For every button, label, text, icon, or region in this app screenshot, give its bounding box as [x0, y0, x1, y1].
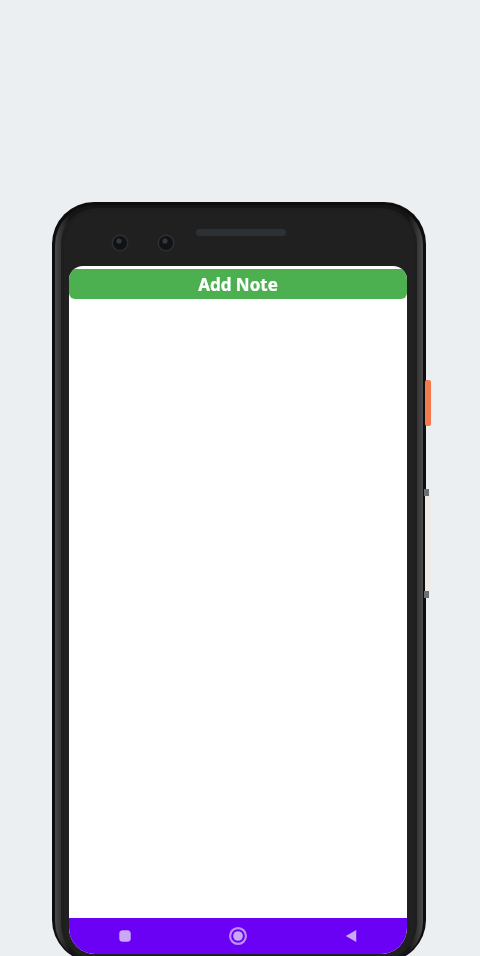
button[interactable]: Home — [181, 918, 294, 954]
button[interactable]: Back — [294, 918, 407, 954]
staticText: Add Note — [198, 273, 278, 296]
button[interactable]: Recent apps — [69, 918, 181, 954]
button[interactable]: Add Note — [69, 269, 407, 299]
